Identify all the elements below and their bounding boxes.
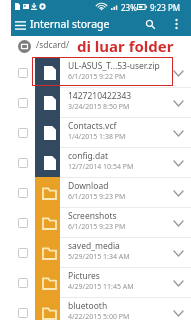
staticText: Internal storage: [30, 17, 110, 31]
staticText: UL-ASUS_T...53-user.zip: [68, 60, 160, 72]
staticText: /sdcard/: [36, 39, 70, 51]
button[interactable]: Pictures: [0, 267, 191, 298]
button[interactable]: bluetooth: [0, 297, 191, 320]
staticText: 6/1/2015 9:23 PM: [68, 222, 126, 232]
button[interactable]: Expand: [169, 214, 187, 232]
button[interactable]: Download: [0, 177, 191, 208]
staticText: Download: [68, 180, 109, 192]
staticText: 4/29/2015 11:45 AM: [68, 282, 134, 292]
button[interactable]: Expand: [169, 154, 187, 172]
staticText: Contacts.vcf: [68, 120, 117, 132]
staticText: 12/7/2014 10:54 PM: [68, 162, 134, 172]
button[interactable]: config.dat: [0, 147, 191, 178]
staticText: 4/22/2015 5:00 PM: [68, 312, 130, 320]
staticText: 9:23 PM: [150, 2, 181, 13]
staticText: bluetooth: [68, 300, 108, 312]
button[interactable]: 1427210422343: [0, 87, 191, 118]
staticText: 1/4/2015 1:38 PM: [68, 132, 126, 142]
button[interactable]: Expand: [169, 94, 187, 112]
button[interactable]: Expand: [169, 184, 187, 202]
staticText: 1427210422343: [68, 90, 132, 102]
button[interactable]: Expand: [169, 124, 187, 142]
button[interactable]: More options: [169, 15, 183, 33]
staticText: 6/1/2015 9:22 PM: [68, 72, 126, 82]
staticText: saved_media: [68, 240, 120, 252]
button[interactable]: Screenshots: [0, 207, 191, 238]
button[interactable]: Expand: [169, 304, 187, 320]
button[interactable]: Expand: [169, 244, 187, 262]
staticText: config.dat: [68, 150, 109, 162]
button[interactable]: Contacts.vcf: [0, 117, 191, 148]
button[interactable]: saved_media: [0, 237, 191, 268]
button[interactable]: Expand: [169, 274, 187, 292]
staticText: di luar folder: [77, 36, 174, 56]
staticText: 5/29/2015 1:34 AM: [68, 252, 130, 262]
staticText: 6/1/2015 9:23 PM: [68, 192, 126, 202]
button[interactable]: UL-ASUS_T...53-user.zip: [0, 57, 191, 88]
staticText: Pictures: [68, 270, 100, 282]
staticText: Screenshots: [68, 210, 117, 222]
staticText: 3/24/2015 8:50 PM: [68, 102, 130, 112]
button[interactable]: Menu: [13, 18, 27, 32]
button[interactable]: Expand: [169, 64, 187, 82]
staticText: 23%: [121, 2, 137, 13]
button[interactable]: Search: [143, 16, 157, 32]
